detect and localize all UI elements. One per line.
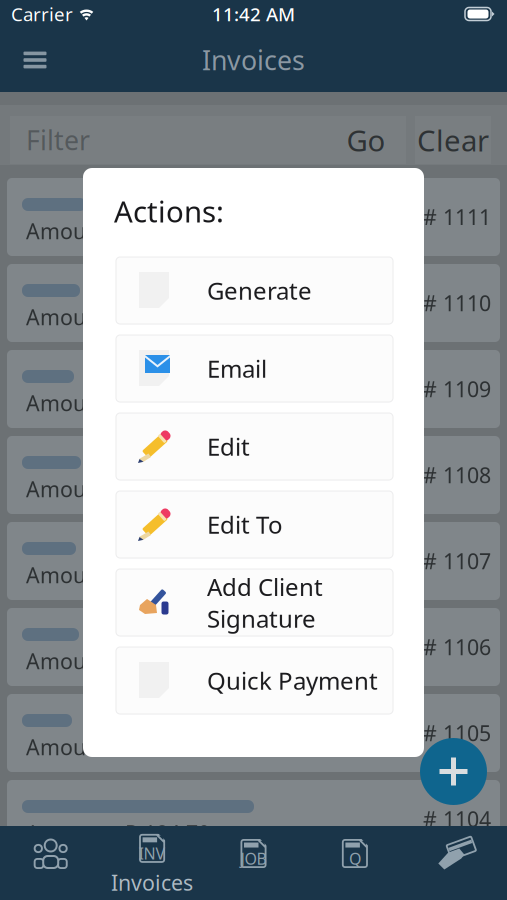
staticText: Quick Payment — [207, 665, 378, 696]
staticText: # 1104 — [423, 805, 491, 833]
button[interactable]: Email — [116, 335, 393, 402]
button[interactable]: Add Client Signature — [116, 569, 393, 636]
button[interactable]: Amount : R 2,300.00 — [7, 178, 500, 256]
staticText: 11:42 AM — [212, 2, 295, 26]
staticText: INV — [139, 843, 166, 864]
staticText: Amount : R 2,300.00 — [26, 217, 228, 245]
staticText: # 1105 — [423, 719, 491, 747]
button[interactable]: Jobs — [203, 826, 304, 900]
button[interactable]: Amount : R 940.00 — [7, 350, 500, 428]
button[interactable]: Quick Payment — [116, 647, 393, 714]
staticText: Amount : R 520.00 — [26, 733, 210, 761]
staticText: Q — [349, 848, 361, 869]
staticText: Carrier — [11, 2, 73, 26]
button[interactable]: Edit — [116, 413, 393, 480]
button[interactable]: Add invoice — [420, 738, 487, 805]
staticText: Invoices — [111, 868, 193, 897]
staticText: Clear — [417, 120, 489, 159]
staticText: # 1107 — [423, 547, 491, 575]
staticText: Amount : R 184.70 — [26, 819, 210, 847]
staticText: Amount : R 980.00 — [26, 561, 210, 589]
button[interactable]: Clear — [415, 116, 491, 164]
staticText: Amount : R 940.00 — [26, 389, 210, 417]
button[interactable]: Payments — [406, 826, 507, 900]
staticText: JOB — [240, 848, 266, 869]
staticText: # 1110 — [423, 289, 491, 317]
button[interactable]: Amount : R 520.00 — [7, 694, 500, 772]
staticText: Generate — [207, 275, 312, 306]
staticText: Go — [346, 120, 385, 159]
staticText: Edit — [207, 431, 250, 462]
button[interactable]: Amount : R 980.00 — [7, 522, 500, 600]
staticText: Actions: — [114, 191, 224, 230]
button[interactable]: Amount : R 1,150.00 — [7, 264, 500, 342]
staticText: Edit To — [207, 509, 283, 540]
staticText: # 1109 — [423, 375, 491, 403]
button[interactable]: Amount : R 1,350.00 — [7, 608, 500, 686]
staticText: # 1106 — [423, 633, 491, 661]
staticText: Amount : R 1,150.00 — [26, 303, 228, 331]
button[interactable]: Invoices — [101, 826, 203, 900]
button[interactable]: Amount : R 184.70 — [7, 780, 500, 858]
button[interactable]: Generate — [116, 257, 393, 324]
button[interactable]: Go — [326, 116, 406, 164]
staticText: # 1108 — [423, 461, 491, 489]
button[interactable]: Amount : R 4,200.00 — [7, 436, 500, 514]
staticText: Amount : R 1,350.00 — [26, 647, 228, 675]
staticText: Invoices — [202, 42, 305, 78]
staticText: Amount : R 4,200.00 — [26, 475, 228, 503]
button[interactable]: Menu — [4, 29, 66, 91]
button[interactable]: Quotes — [304, 826, 406, 900]
staticText: Filter — [26, 122, 90, 158]
staticText: Add Client Signature — [207, 571, 323, 634]
staticText: # 1111 — [423, 203, 491, 231]
staticText: Email — [207, 353, 267, 384]
button[interactable]: Edit To — [116, 491, 393, 558]
button[interactable]: Clients — [0, 826, 101, 900]
